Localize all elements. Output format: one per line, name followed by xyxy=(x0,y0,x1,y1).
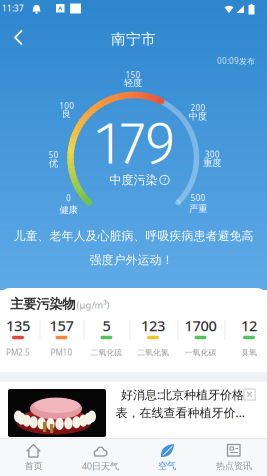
staticText: 50 xyxy=(48,149,58,160)
button[interactable]: 返回 xyxy=(3,15,33,59)
staticText: 良 xyxy=(62,108,71,120)
staticText: 300 xyxy=(205,149,220,160)
staticText: 1700 xyxy=(184,316,216,335)
staticText: 150 xyxy=(125,70,140,80)
staticText: 40日天气 xyxy=(82,460,119,472)
button[interactable]: 好消息:北京种植牙价格 xyxy=(0,382,267,438)
staticText: 00:09发布 xyxy=(217,56,255,66)
button[interactable]: 帮助 xyxy=(156,172,172,188)
staticText: 严重 xyxy=(189,203,207,214)
staticText: 空气 xyxy=(158,460,176,472)
staticText: 儿童、老年人及心脏病、呼吸疾病患者避免高 xyxy=(13,229,253,243)
staticText: PM10 xyxy=(50,347,72,358)
staticText: 0 xyxy=(66,193,71,203)
staticText: 二氧化氮 xyxy=(137,348,169,357)
staticText: 热点资讯 xyxy=(216,460,252,472)
button[interactable]: 40日天气 xyxy=(67,438,134,476)
staticText: A xyxy=(58,5,62,12)
staticText: 100 xyxy=(59,101,74,111)
staticText: 主要污染物 xyxy=(10,296,75,312)
staticText: 179 xyxy=(94,107,175,179)
staticText: 轻度 xyxy=(124,77,142,89)
staticText: 135 xyxy=(6,316,30,335)
staticText: 健康 xyxy=(59,204,77,216)
staticText: 157 xyxy=(49,316,73,335)
staticText: 中度污染 xyxy=(109,173,157,187)
staticText: 首页 xyxy=(24,460,42,472)
staticText: 二氧化硫 xyxy=(90,348,122,357)
staticText: 强度户外运动！ xyxy=(89,253,173,267)
button[interactable]: 热点资讯 xyxy=(200,438,267,476)
button[interactable]: 首页 xyxy=(0,438,67,476)
staticText: 中度 xyxy=(189,111,207,122)
staticText: 重度 xyxy=(203,157,221,169)
button[interactable]: 关闭广告 xyxy=(242,387,257,402)
staticText: 臭氧 xyxy=(241,348,257,357)
staticText: 123 xyxy=(141,316,165,335)
staticText: 一氧化碳 xyxy=(184,348,216,357)
staticText: 好消息:北京种植牙价格 xyxy=(121,386,244,402)
staticText: 表，在线查看种植牙价… xyxy=(115,404,244,420)
staticText: 5 xyxy=(102,316,110,335)
staticText: 200 xyxy=(190,102,205,113)
staticText: 11:37 xyxy=(2,3,24,14)
staticText: 500 xyxy=(190,193,205,203)
staticText: (μg/m³) xyxy=(76,299,109,311)
button[interactable]: 空气 xyxy=(133,438,200,476)
staticText: 优 xyxy=(49,158,58,169)
staticText: PM2.5 xyxy=(6,347,30,358)
staticText: ? xyxy=(163,176,166,185)
staticText: 南宁市 xyxy=(111,30,156,48)
staticText: 12 xyxy=(241,316,257,335)
